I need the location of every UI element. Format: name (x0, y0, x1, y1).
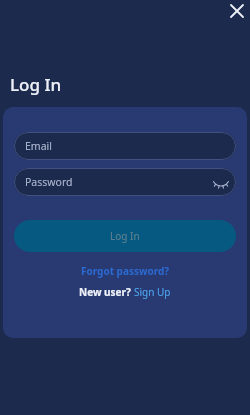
button[interactable]: Forgot password? (81, 264, 170, 278)
staticText: Password (25, 175, 73, 189)
staticText: Log In (10, 73, 62, 96)
staticText: Sign Up (134, 285, 171, 299)
button[interactable]: Sign Up (134, 285, 171, 299)
staticText: Forgot password? (81, 264, 170, 278)
button[interactable] (226, 0, 248, 22)
button[interactable]: Email (14, 132, 236, 160)
staticText: New user? (79, 285, 134, 299)
staticText: Email (25, 139, 52, 153)
button[interactable]: Password (14, 168, 236, 196)
button[interactable]: Log In (14, 220, 236, 252)
staticText: Log In (110, 229, 140, 243)
